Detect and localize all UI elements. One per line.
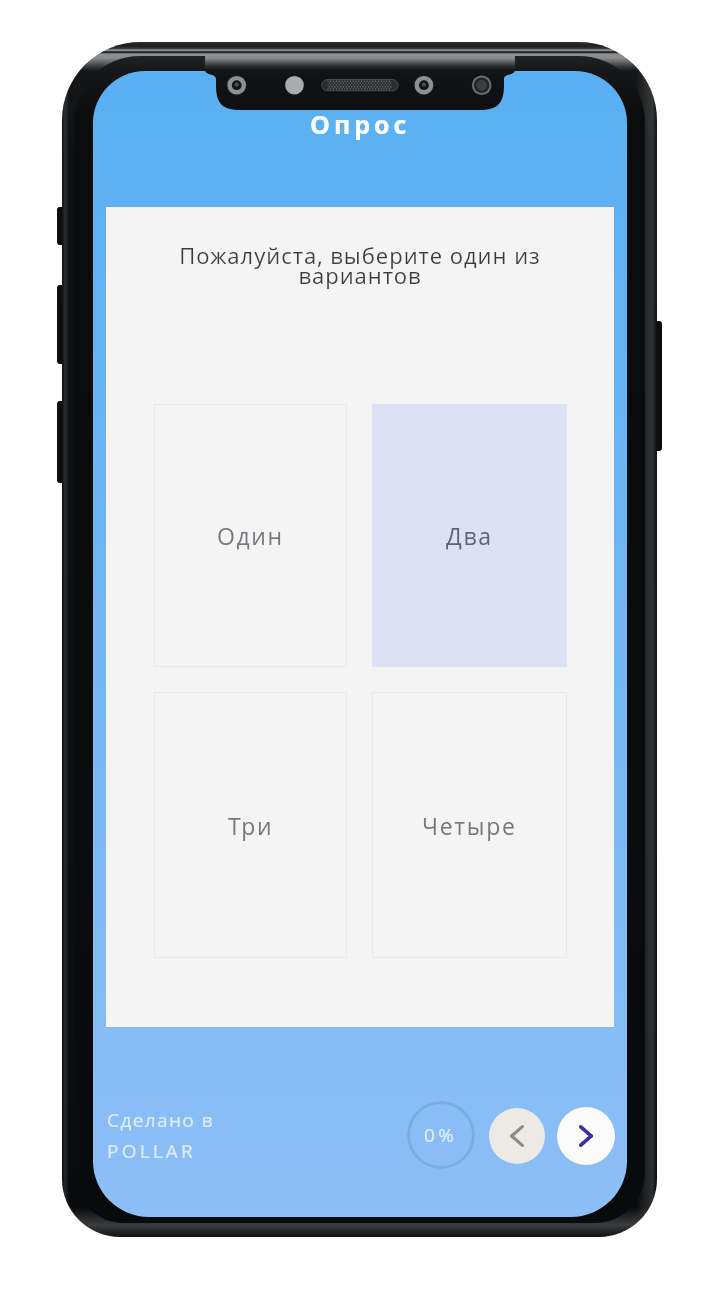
staticText: Четыре — [422, 810, 517, 841]
button[interactable]: Один — [154, 404, 347, 667]
staticText: Пожалуйста, выберите один из вариантов — [176, 240, 544, 290]
staticText: Один — [217, 520, 284, 551]
button[interactable]: Два — [372, 404, 567, 667]
staticText: Два — [446, 520, 493, 551]
button[interactable]: Четыре — [372, 692, 567, 958]
button[interactable]: Previous question — [489, 1108, 545, 1164]
staticText: POLLAR — [107, 1138, 196, 1164]
button[interactable]: Опрос — [93, 107, 627, 141]
button[interactable]: Next question — [557, 1107, 615, 1165]
button[interactable]: Progress 0 percent — [407, 1101, 475, 1169]
staticText: Сделано в — [107, 1107, 214, 1133]
staticText: Опрос — [310, 107, 411, 141]
staticText: Три — [228, 810, 274, 841]
button[interactable]: Три — [154, 692, 347, 958]
staticText: 0% — [424, 1122, 458, 1148]
